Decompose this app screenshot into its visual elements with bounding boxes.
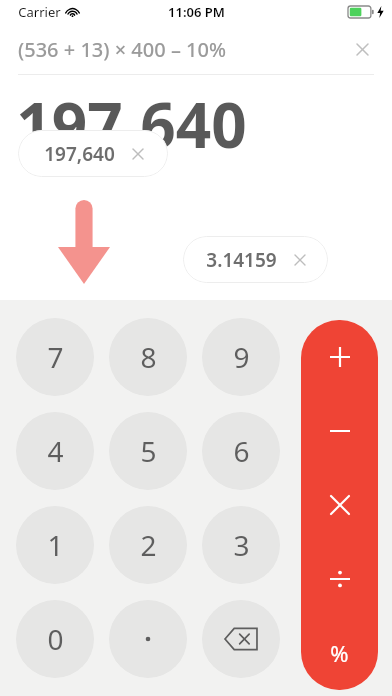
staticText: 2 <box>140 526 157 564</box>
button[interactable]: Delete <box>202 600 280 678</box>
staticText: 0 <box>47 620 64 658</box>
staticText: 7 <box>47 338 64 376</box>
button[interactable]: Clear expression <box>342 29 382 69</box>
button[interactable]: Percent <box>301 616 378 690</box>
button[interactable] <box>109 600 187 678</box>
button[interactable]: 4 <box>16 412 94 490</box>
button[interactable]: 8 <box>109 318 187 396</box>
staticText: 197,640 <box>16 82 247 166</box>
staticText: (536 + 13) × 400 – 10% <box>18 36 226 63</box>
staticText: 6 <box>233 432 250 470</box>
button[interactable]: 197,640 <box>18 130 168 177</box>
button[interactable]: 9 <box>202 318 280 396</box>
button[interactable]: Minus <box>301 394 378 468</box>
button[interactable]: 0 <box>16 600 94 678</box>
staticText: 4 <box>47 432 64 470</box>
button[interactable]: 3 <box>202 506 280 584</box>
staticText: Carrier <box>18 3 61 21</box>
button[interactable]: Multiply <box>301 468 378 542</box>
button[interactable]: Plus <box>301 320 378 394</box>
button[interactable]: 2 <box>109 506 187 584</box>
staticText: % <box>330 638 349 668</box>
button[interactable]: 5 <box>109 412 187 490</box>
staticText: 1 <box>47 526 64 564</box>
staticText: 197,640 <box>44 141 115 167</box>
staticText: 9 <box>233 338 250 376</box>
staticText: 3.14159 <box>206 247 277 273</box>
button[interactable]: 6 <box>202 412 280 490</box>
button[interactable]: 1 <box>16 506 94 584</box>
staticText: 3 <box>233 526 250 564</box>
staticText: 11:06 PM <box>168 3 225 21</box>
button[interactable]: 3.14159 <box>183 236 328 283</box>
staticText: 8 <box>140 338 157 376</box>
button[interactable]: Divide <box>301 542 378 616</box>
button[interactable]: 7 <box>16 318 94 396</box>
staticText: 5 <box>140 432 157 470</box>
